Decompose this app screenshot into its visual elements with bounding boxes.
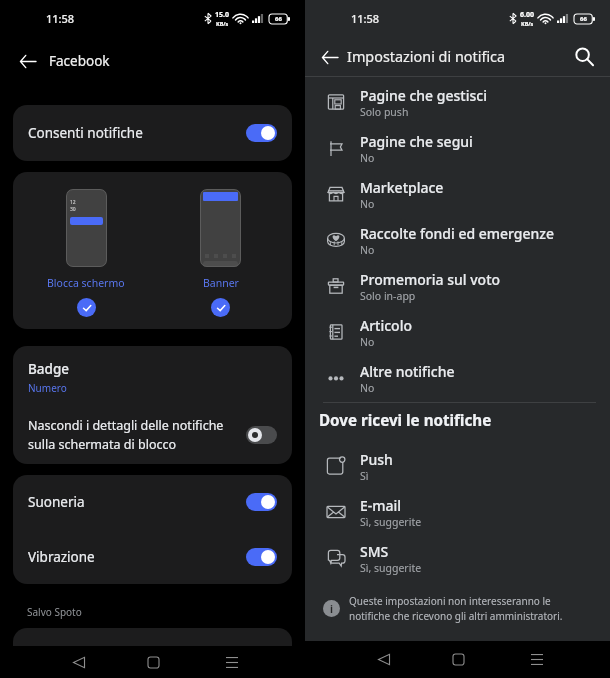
button[interactable]: E-mail bbox=[305, 489, 610, 535]
staticText: No bbox=[360, 335, 375, 349]
button[interactable]: Banner bbox=[200, 172, 241, 317]
staticText: Altre notifiche bbox=[360, 362, 455, 381]
staticText: Consenti notifiche bbox=[28, 124, 143, 142]
staticText: Marketplace bbox=[360, 178, 444, 197]
button[interactable]: Back bbox=[362, 641, 406, 678]
button[interactable]: Pagine che gestisci bbox=[305, 79, 610, 125]
button[interactable]: Back bbox=[13, 46, 43, 76]
staticText: Pagine che segui bbox=[360, 132, 473, 151]
button[interactable]: Raccolte fondi ed emergenze bbox=[305, 217, 610, 263]
staticText: Pagine che gestisci bbox=[360, 86, 487, 105]
staticText: 15.0 bbox=[215, 10, 229, 20]
button[interactable]: Home bbox=[131, 646, 175, 678]
staticText: No bbox=[360, 151, 375, 165]
staticText: Dove ricevi le notifiche bbox=[319, 410, 492, 431]
staticText: Sì bbox=[360, 469, 369, 483]
staticText: No bbox=[360, 381, 375, 395]
staticText: Solo in-app bbox=[360, 289, 416, 303]
button[interactable]: Search bbox=[568, 41, 600, 73]
staticText: Vibrazione bbox=[28, 548, 95, 566]
button[interactable]: Articolo bbox=[305, 309, 610, 355]
staticText: Salvo Spoto bbox=[27, 605, 82, 619]
button[interactable]: Disabled bbox=[246, 426, 277, 444]
staticText: Solo push bbox=[360, 105, 409, 119]
button[interactable]: Recents bbox=[515, 641, 559, 678]
staticText: 6.00 bbox=[520, 10, 534, 20]
button[interactable]: Enabled bbox=[246, 548, 277, 566]
staticText: E-mail bbox=[360, 496, 402, 515]
staticText: Nascondi i dettagli delle notifiche sull… bbox=[28, 417, 240, 453]
button[interactable]: SMS bbox=[305, 535, 610, 581]
staticText: 30 bbox=[70, 206, 76, 213]
staticText: SMS bbox=[360, 542, 389, 561]
staticText: 11:58 bbox=[351, 11, 380, 26]
staticText: Blocca schermo bbox=[47, 276, 125, 290]
staticText: KB/s bbox=[521, 20, 534, 27]
staticText: No bbox=[360, 197, 375, 211]
button[interactable]: Back bbox=[315, 42, 345, 72]
button[interactable]: Back bbox=[57, 646, 101, 678]
staticText: KB/s bbox=[216, 20, 229, 27]
staticText: Push bbox=[360, 450, 393, 469]
button[interactable]: Enabled bbox=[246, 493, 277, 511]
staticText: Promemoria sul voto bbox=[360, 270, 501, 289]
staticText: Queste impostazioni non interesseranno l… bbox=[349, 594, 563, 623]
staticText: 11:58 bbox=[46, 11, 75, 26]
staticText: No bbox=[360, 243, 375, 257]
staticText: 12 bbox=[70, 199, 76, 206]
staticText: Suoneria bbox=[28, 493, 85, 511]
staticText: Raccolte fondi ed emergenze bbox=[360, 224, 555, 243]
button[interactable]: Enabled bbox=[246, 124, 277, 142]
button[interactable]: Marketplace bbox=[305, 171, 610, 217]
staticText: 66 bbox=[275, 15, 282, 23]
staticText: Sì, suggerite bbox=[360, 561, 422, 575]
button[interactable]: Push bbox=[305, 443, 610, 489]
button[interactable]: 12 bbox=[47, 172, 125, 317]
button[interactable]: Home bbox=[436, 641, 480, 678]
button[interactable]: Pagine che segui bbox=[305, 125, 610, 171]
button[interactable]: Promemoria sul voto bbox=[305, 263, 610, 309]
staticText: i bbox=[330, 602, 333, 616]
staticText: 66 bbox=[580, 15, 587, 23]
staticText: Impostazioni di notifica bbox=[347, 47, 506, 67]
button[interactable]: Recents bbox=[210, 646, 254, 678]
staticText: Badge bbox=[28, 360, 70, 378]
button[interactable]: Altre notifiche bbox=[305, 355, 610, 401]
staticText: Banner bbox=[203, 276, 239, 290]
staticText: Articolo bbox=[360, 316, 412, 335]
staticText: Numero bbox=[28, 381, 67, 395]
staticText: Sì, suggerite bbox=[360, 515, 422, 529]
staticText: Facebook bbox=[49, 52, 110, 70]
